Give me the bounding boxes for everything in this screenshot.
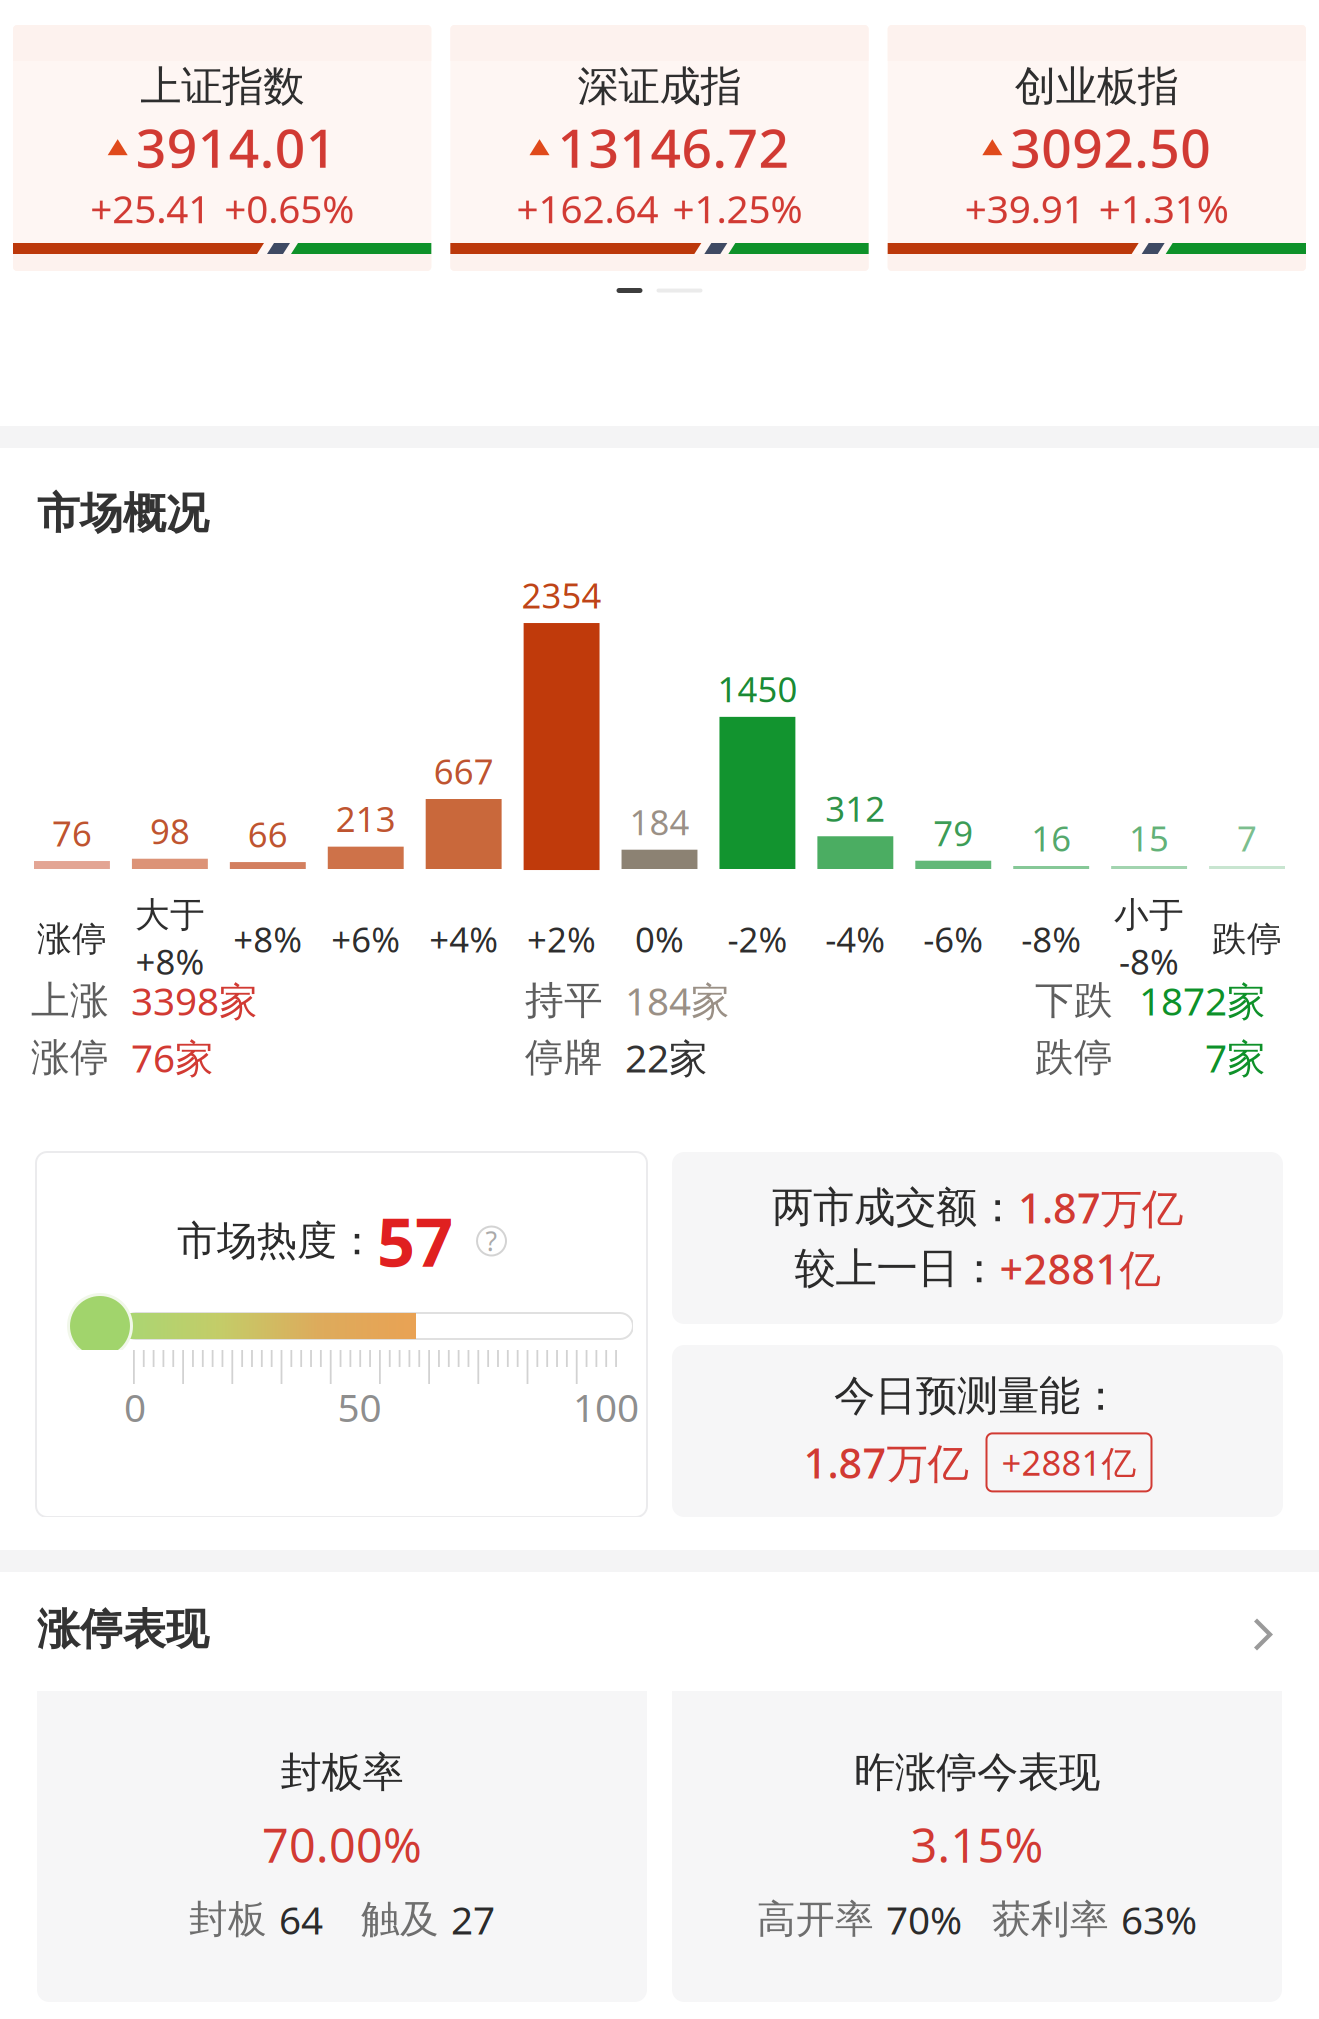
staticText: +162.64 bbox=[516, 183, 658, 234]
staticText: 3914.01 bbox=[136, 112, 337, 183]
staticText: 涨停表现 bbox=[37, 1603, 209, 1656]
staticText: 跌停 bbox=[1212, 918, 1282, 960]
staticText: 昨涨停今表现 bbox=[854, 1747, 1100, 1798]
staticText: 213 bbox=[336, 796, 396, 842]
button[interactable]: 封板率 bbox=[37, 1691, 647, 2002]
staticText: 16 bbox=[1031, 815, 1071, 861]
staticText: 66 bbox=[248, 811, 288, 857]
staticText: 创业板指 bbox=[1015, 61, 1179, 112]
staticText: 较上一日： bbox=[794, 1243, 999, 1294]
staticText: 封板 bbox=[189, 1896, 267, 1943]
button[interactable]: 深证成指 bbox=[450, 25, 869, 271]
staticText: +2% bbox=[527, 916, 596, 962]
staticText: ? bbox=[485, 1223, 497, 1259]
staticText: 两市成交额： bbox=[772, 1182, 1018, 1233]
staticText: 大于 bbox=[135, 894, 205, 936]
staticText: 3.15% bbox=[910, 1814, 1043, 1876]
staticText: 1450 bbox=[717, 666, 797, 712]
staticText: 184 bbox=[629, 799, 689, 845]
staticText: 312 bbox=[825, 785, 885, 831]
staticText: 7 bbox=[1237, 815, 1257, 861]
button[interactable]: 涨停表现 bbox=[0, 1606, 1319, 1653]
staticText: 76 bbox=[52, 810, 92, 856]
staticText: 深证成指 bbox=[577, 61, 741, 112]
staticText: 98 bbox=[150, 808, 190, 854]
button[interactable]: 市场热度说明 bbox=[453, 1226, 506, 1255]
staticText: 封板率 bbox=[280, 1747, 403, 1798]
staticText: 100 bbox=[573, 1381, 639, 1433]
staticText: 15 bbox=[1129, 815, 1169, 861]
staticText: 667 bbox=[434, 748, 494, 794]
button[interactable]: 创业板指 bbox=[888, 25, 1306, 271]
staticText: -6% bbox=[923, 916, 983, 962]
staticText: +2881亿 bbox=[1001, 1439, 1136, 1485]
staticText: +2881亿 bbox=[999, 1241, 1160, 1296]
staticText: 2354 bbox=[522, 572, 602, 618]
staticText: 13146.72 bbox=[557, 112, 789, 183]
staticText: +1.25% bbox=[672, 183, 802, 234]
staticText: 涨停 bbox=[37, 918, 107, 960]
staticText: 持平 bbox=[525, 977, 603, 1024]
staticText: 市场热度： bbox=[177, 1216, 377, 1265]
staticText: 1872家 bbox=[1139, 975, 1266, 1026]
staticText: -8% bbox=[1119, 938, 1179, 984]
staticText: 上证指数 bbox=[140, 61, 304, 112]
staticText: 22家 bbox=[625, 1032, 708, 1083]
staticText: 64 bbox=[279, 1894, 323, 1945]
staticText: 市场概况 bbox=[37, 487, 209, 540]
staticText: 触及 bbox=[361, 1896, 439, 1943]
staticText: +25.41 bbox=[90, 183, 210, 234]
staticText: 1.87万亿 bbox=[1018, 1180, 1183, 1235]
staticText: 跌停 bbox=[1035, 1034, 1113, 1081]
button[interactable]: 昨涨停今表现 bbox=[672, 1691, 1282, 2002]
staticText: 27 bbox=[451, 1894, 495, 1945]
staticText: 高开率 bbox=[757, 1896, 874, 1943]
staticText: 0% bbox=[635, 916, 684, 962]
staticText: 70% bbox=[886, 1894, 962, 1945]
staticText: 79 bbox=[933, 810, 973, 856]
staticText: -4% bbox=[825, 916, 885, 962]
staticText: +39.91 bbox=[965, 183, 1085, 234]
staticText: 获利率 bbox=[992, 1896, 1109, 1943]
staticText: 3398家 bbox=[131, 975, 258, 1026]
staticText: 57 bbox=[377, 1197, 453, 1285]
staticText: +8% bbox=[135, 938, 204, 984]
staticText: 184家 bbox=[625, 975, 730, 1026]
staticText: 下跌 bbox=[1035, 977, 1113, 1024]
button[interactable]: 上证指数 bbox=[13, 25, 431, 271]
staticText: 上涨 bbox=[31, 977, 109, 1024]
staticText: 小于 bbox=[1114, 894, 1184, 936]
staticText: 今日预测量能： bbox=[834, 1371, 1121, 1421]
staticText: +4% bbox=[429, 916, 498, 962]
staticText: 70.00% bbox=[262, 1814, 422, 1876]
staticText: 7家 bbox=[1205, 1032, 1266, 1083]
staticText: 涨停 bbox=[31, 1034, 109, 1081]
staticText: 1.87万亿 bbox=[803, 1435, 968, 1490]
staticText: +8% bbox=[233, 916, 302, 962]
staticText: +0.65% bbox=[224, 183, 354, 234]
staticText: +6% bbox=[331, 916, 400, 962]
staticText: 76家 bbox=[131, 1032, 214, 1083]
staticText: 63% bbox=[1121, 1894, 1197, 1945]
staticText: 3092.50 bbox=[1010, 112, 1211, 183]
staticText: -8% bbox=[1021, 916, 1081, 962]
staticText: 0 bbox=[124, 1381, 146, 1433]
staticText: +1.31% bbox=[1099, 183, 1229, 234]
staticText: 50 bbox=[337, 1381, 381, 1433]
staticText: 停牌 bbox=[525, 1034, 603, 1081]
staticText: -2% bbox=[727, 916, 787, 962]
